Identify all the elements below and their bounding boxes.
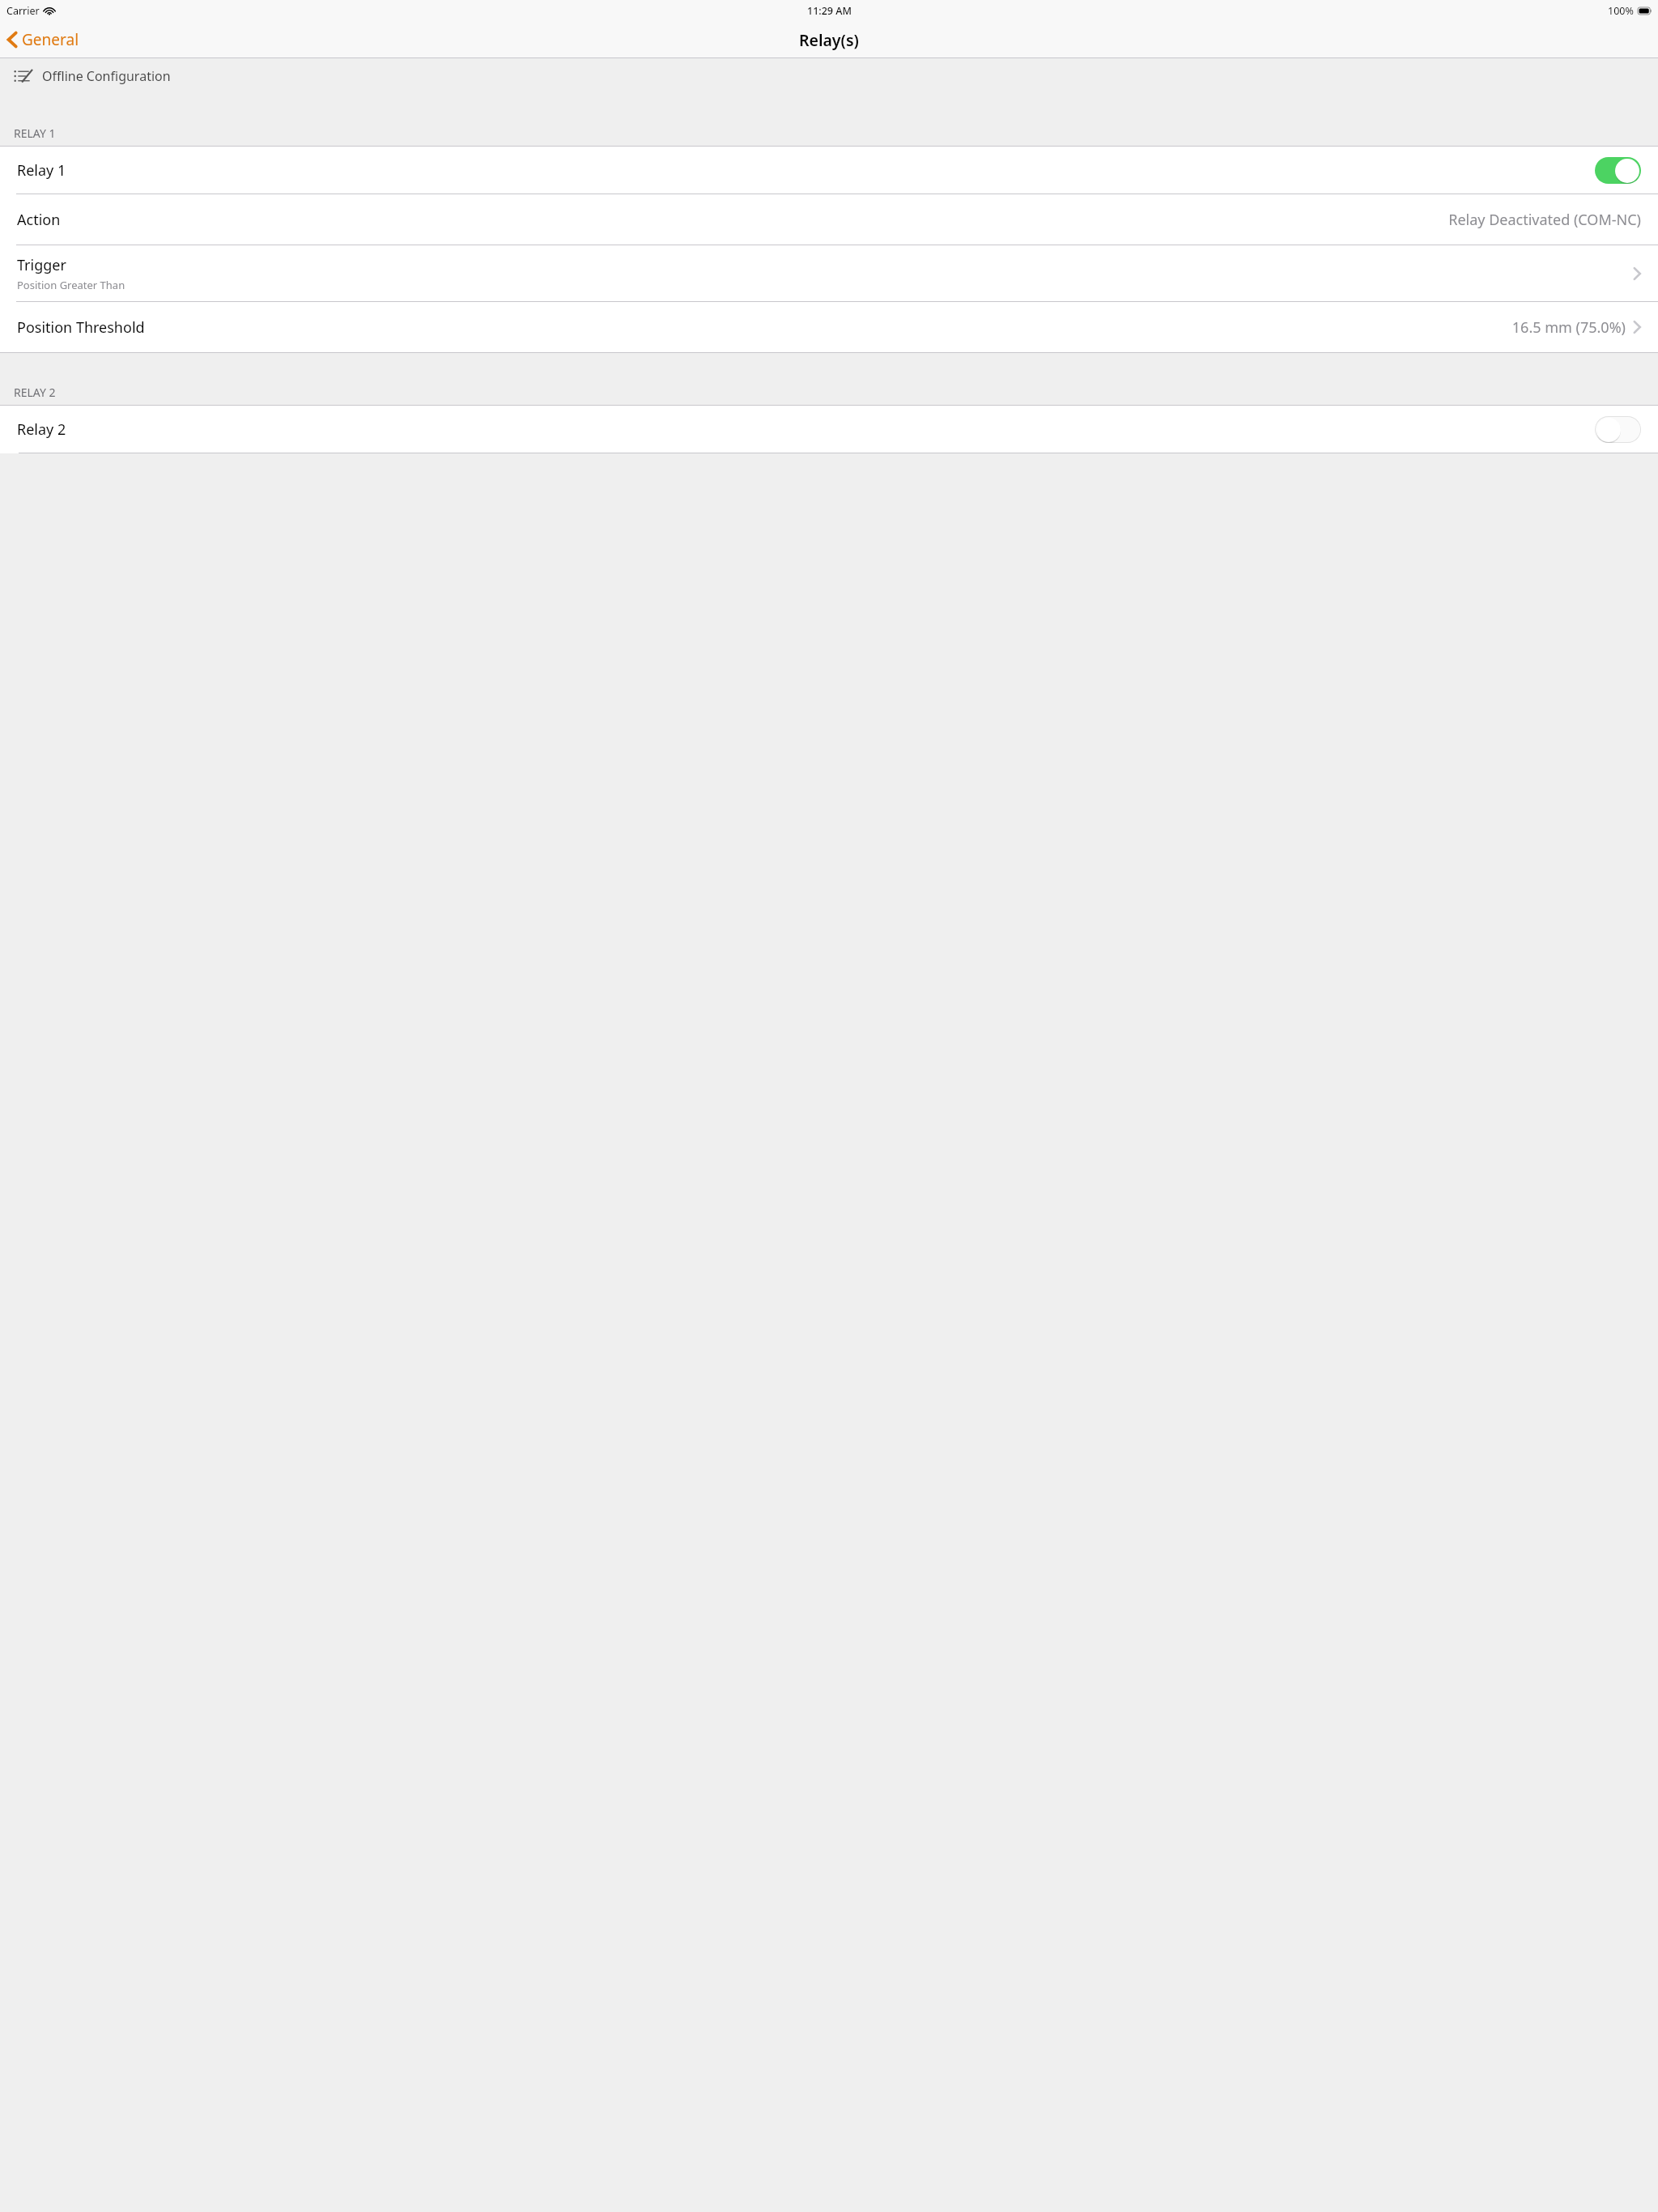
staticText: 16.5 mm (75.0%) <box>1511 317 1626 338</box>
staticText: Relay 2 <box>17 419 66 440</box>
button[interactable]: Relay 2 <box>0 406 1658 453</box>
button[interactable]: Trigger <box>0 245 1658 301</box>
staticText: Relay 1 <box>17 160 66 181</box>
button[interactable]: Toggle off <box>1595 416 1641 443</box>
staticText: Relay(s) <box>799 29 859 51</box>
staticText: 100% <box>1608 4 1634 18</box>
staticText: Relay Deactivated (COM-NC) <box>1448 210 1641 230</box>
button[interactable]: Position Threshold <box>0 302 1658 352</box>
staticText: Position Threshold <box>17 317 145 338</box>
staticText: Offline Configuration <box>42 67 171 85</box>
button[interactable]: General <box>0 24 91 55</box>
staticText: RELAY 2 <box>14 385 56 400</box>
button[interactable]: Toggle on <box>1595 157 1641 184</box>
button[interactable]: Action <box>0 194 1658 245</box>
staticText: Action <box>17 210 61 230</box>
staticText: General <box>22 29 79 50</box>
staticText: RELAY 1 <box>14 125 56 141</box>
staticText: Trigger <box>17 255 66 275</box>
staticText: 11:29 AM <box>807 4 852 18</box>
button[interactable]: Offline Configuration <box>0 58 1658 94</box>
button[interactable]: Relay 1 <box>0 147 1658 194</box>
staticText: Position Greater Than <box>17 278 125 292</box>
staticText: Carrier <box>6 4 40 18</box>
